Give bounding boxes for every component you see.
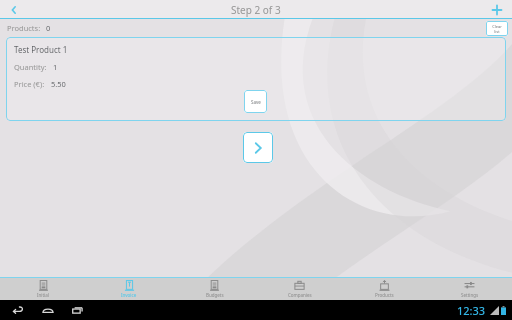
button[interactable]: Clear list (486, 21, 508, 36)
button[interactable]: Recents (69, 301, 87, 319)
button[interactable]: Initial (0, 278, 86, 300)
staticText: 12:33 (457, 303, 486, 318)
button[interactable]: Add (482, 0, 512, 19)
button[interactable]: Test Product 1 (6, 37, 506, 121)
staticText: Companies (288, 292, 312, 298)
staticText: Settings (461, 292, 479, 298)
staticText: Save (251, 99, 261, 105)
staticText: Quantity: (14, 62, 47, 72)
button[interactable]: Products (342, 278, 427, 300)
staticText: Products: (7, 23, 41, 33)
staticText: Test Product 1 (14, 44, 68, 55)
button[interactable]: Back (9, 301, 27, 319)
staticText: 5.50 (51, 79, 66, 89)
staticText: Invoice (121, 292, 137, 298)
staticText: Initial (37, 292, 49, 298)
button[interactable]: Budgets (172, 278, 257, 300)
staticText: Price (€): (14, 79, 45, 89)
button[interactable]: Settings (427, 278, 512, 300)
button[interactable]: Invoice (86, 278, 172, 300)
button[interactable]: Companies (257, 278, 342, 300)
button[interactable]: Save (244, 90, 267, 113)
staticText: 0 (46, 23, 51, 33)
button[interactable]: Back (0, 0, 28, 19)
staticText: Products (375, 292, 394, 298)
button[interactable]: Next step (243, 132, 273, 163)
button[interactable]: Home (39, 301, 57, 319)
staticText: Clear list (492, 24, 502, 34)
staticText: Step 2 of 3 (231, 3, 281, 17)
staticText: 1 (53, 62, 58, 72)
staticText: Budgets (206, 292, 224, 298)
